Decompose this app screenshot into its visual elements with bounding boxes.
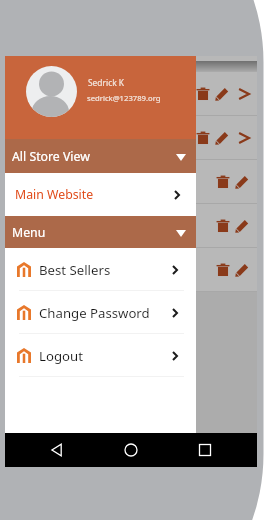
staticText: Logout [39, 347, 83, 365]
button[interactable]: Change Password [5, 291, 196, 334]
button[interactable]: Menu [5, 216, 196, 248]
staticText: Change Password [39, 304, 150, 322]
button[interactable]: Delete [216, 219, 230, 233]
button[interactable]: Delete [216, 263, 230, 277]
staticText: Best Sellers [39, 261, 111, 279]
button[interactable]: Edit [235, 219, 249, 233]
button[interactable]: Edit [215, 131, 229, 145]
button[interactable]: Delete [5, 116, 257, 160]
button[interactable]: Logout [5, 334, 196, 377]
button[interactable]: Delete [5, 160, 257, 204]
staticText: sedrick@123789.org [87, 93, 161, 103]
button[interactable]: Home [124, 443, 138, 457]
staticText: All Store View [12, 148, 90, 165]
button[interactable]: Delete [5, 204, 257, 248]
button[interactable]: Open [238, 88, 250, 100]
button[interactable]: Edit [235, 263, 249, 277]
button[interactable]: Delete [216, 175, 230, 189]
button[interactable]: Edit [235, 175, 249, 189]
button[interactable]: Recents [198, 443, 212, 457]
button[interactable]: Sedrick K [5, 56, 196, 139]
staticText: Main Website [15, 186, 94, 203]
staticText: Menu [12, 224, 46, 241]
button[interactable]: Delete [196, 87, 210, 101]
button[interactable]: Delete [5, 248, 257, 292]
button[interactable]: Edit [215, 87, 229, 101]
button[interactable]: Open [238, 132, 250, 144]
button[interactable]: Best Sellers [5, 248, 196, 291]
button[interactable]: Back [50, 443, 64, 457]
button[interactable]: Delete [196, 131, 210, 145]
button[interactable]: All Store View [5, 139, 196, 173]
staticText: Sedrick K [88, 77, 125, 88]
button[interactable]: Delete [5, 72, 257, 116]
button[interactable]: Main Website [5, 173, 196, 216]
